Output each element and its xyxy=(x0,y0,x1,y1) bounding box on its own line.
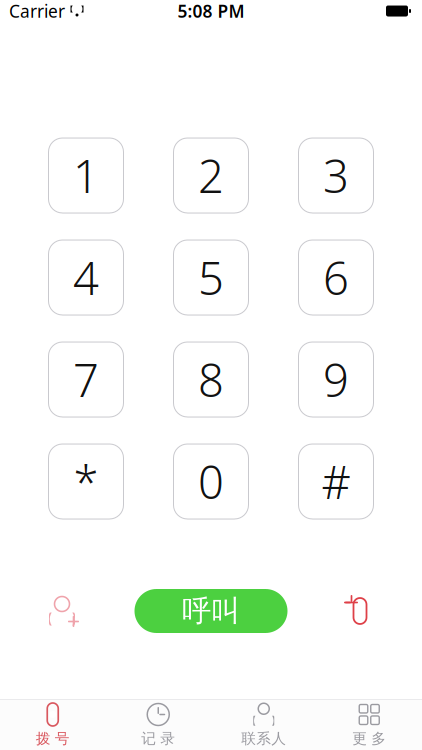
staticText: 拨 号 xyxy=(36,729,70,747)
staticText: 7 xyxy=(73,349,99,410)
button[interactable]: 2 xyxy=(173,138,248,213)
staticText: # xyxy=(321,451,350,512)
button[interactable]: 6 xyxy=(298,240,373,315)
staticText: 6 xyxy=(323,247,349,308)
button[interactable]: 拨 号 xyxy=(0,700,105,750)
button[interactable]: # xyxy=(298,444,373,519)
staticText: 2 xyxy=(198,145,224,206)
button[interactable]: 记 录 xyxy=(105,700,211,750)
staticText: 联系人 xyxy=(241,729,286,747)
button[interactable]: 1 xyxy=(48,138,123,213)
button[interactable]: 5 xyxy=(173,240,248,315)
button[interactable]: 联系人 xyxy=(211,700,316,750)
staticText: 更 多 xyxy=(352,729,386,747)
staticText: * xyxy=(73,451,98,512)
staticText: Carrier xyxy=(9,0,65,22)
button[interactable]: 8 xyxy=(173,342,248,417)
button[interactable]: 更 多 xyxy=(316,700,422,750)
staticText: 5 xyxy=(198,247,224,308)
staticText: 5:08 PM xyxy=(177,0,244,22)
button[interactable]: * xyxy=(48,444,123,519)
button[interactable]: 4 xyxy=(48,240,123,315)
staticText: 3 xyxy=(323,145,349,206)
staticText: 呼叫 xyxy=(182,593,240,629)
staticText: 1 xyxy=(73,145,99,206)
button[interactable]: 3 xyxy=(298,138,373,213)
staticText: 0 xyxy=(198,451,224,512)
button[interactable]: 9 xyxy=(298,342,373,417)
button[interactable]: Outgoing Call xyxy=(328,587,392,635)
button[interactable]: 7 xyxy=(48,342,123,417)
staticText: 9 xyxy=(323,349,349,410)
staticText: 8 xyxy=(198,349,224,410)
staticText: 记 录 xyxy=(141,729,175,747)
staticText: 4 xyxy=(73,247,99,308)
button[interactable]: Add Contact xyxy=(30,587,94,635)
button[interactable]: 0 xyxy=(173,444,248,519)
button[interactable]: 呼叫 xyxy=(134,589,287,633)
